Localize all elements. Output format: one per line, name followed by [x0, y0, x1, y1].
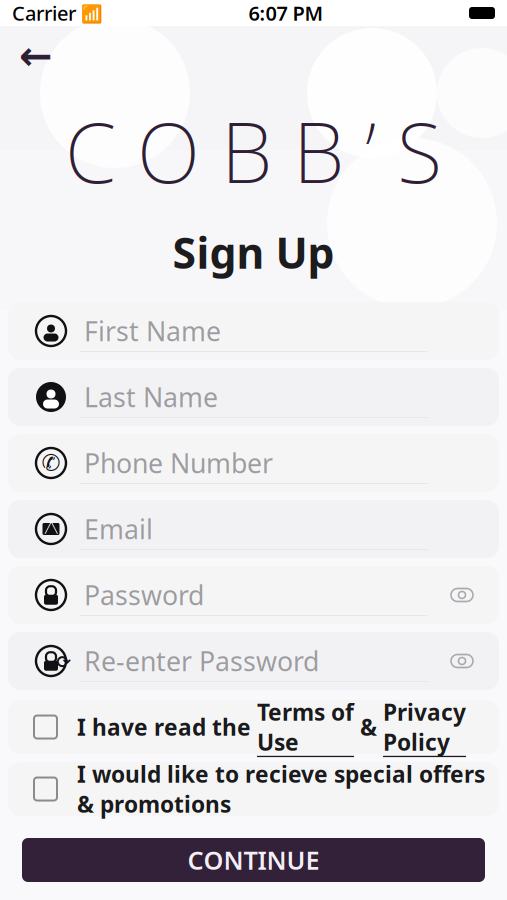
button[interactable]: Password: [8, 566, 499, 624]
staticText: Privacy Policy: [383, 697, 466, 757]
staticText: I have read the: [77, 712, 257, 742]
staticText: Re-enter Password: [84, 643, 319, 679]
button[interactable]: ✆: [8, 434, 499, 492]
staticText: C O B B ’ S: [65, 96, 442, 206]
staticText: Terms of Use: [257, 697, 354, 757]
staticText: ╱╲: [45, 521, 57, 533]
staticText: Password: [84, 577, 204, 613]
staticText: 📶: [76, 1, 103, 24]
button[interactable]: I would like to recieve special offers &…: [8, 762, 499, 816]
button[interactable]: Back: [14, 34, 58, 78]
button[interactable]: ╱╲: [8, 500, 499, 558]
button[interactable]: I have read the: [8, 700, 499, 754]
button[interactable]: ⟳: [8, 632, 499, 690]
staticText: Email: [84, 511, 153, 547]
button[interactable]: Last Name: [8, 368, 499, 426]
staticText: First Name: [84, 313, 221, 349]
staticText: Sign Up: [172, 224, 334, 280]
staticText: 6:07 PM: [248, 0, 323, 26]
staticText: Carrier: [12, 0, 76, 26]
staticText: I would like to recieve special offers &…: [77, 759, 485, 819]
staticText: ⟳: [56, 652, 71, 672]
staticText: Last Name: [84, 379, 218, 415]
staticText: ✆: [41, 450, 60, 476]
staticText: ←: [19, 33, 53, 79]
staticText: &: [354, 712, 383, 742]
staticText: Phone Number: [84, 445, 273, 481]
button[interactable]: First Name: [8, 302, 499, 360]
button[interactable]: CONTINUE: [22, 838, 485, 882]
staticText: CONTINUE: [187, 843, 319, 877]
